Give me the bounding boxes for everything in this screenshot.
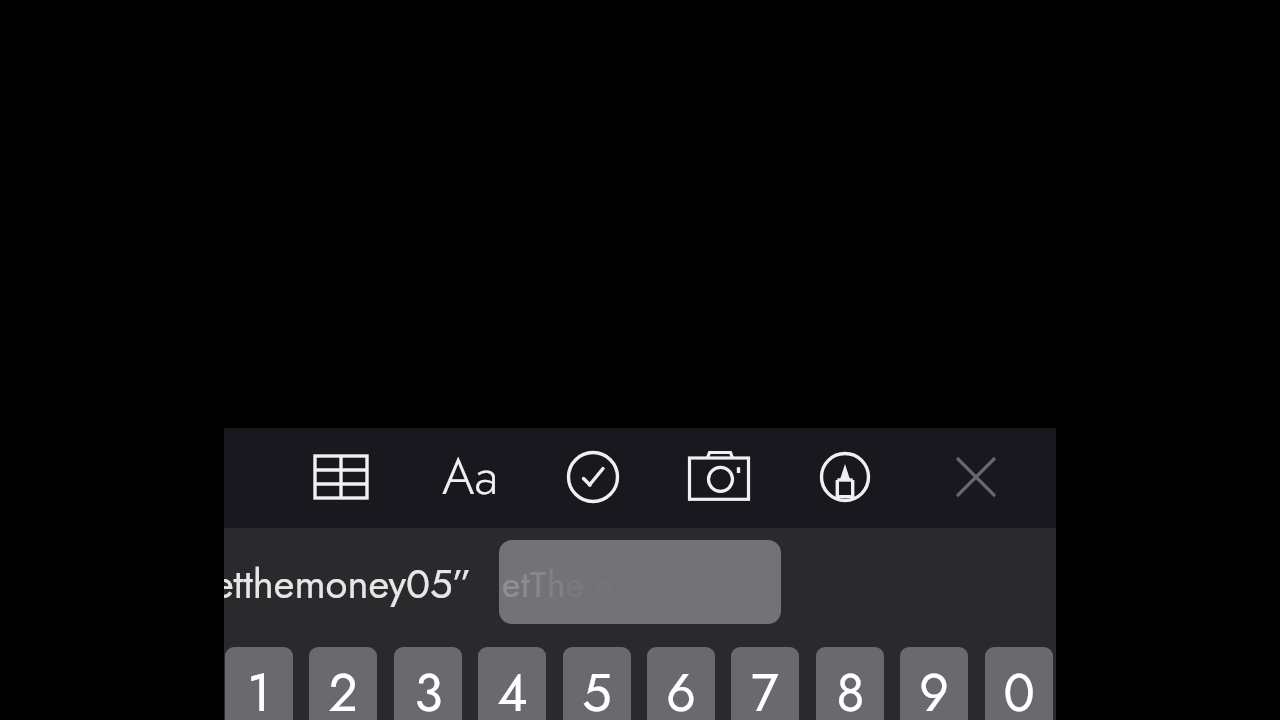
staticText: 7	[751, 655, 779, 720]
button[interactable]: Camera	[688, 446, 750, 508]
button[interactable]: 6	[647, 647, 715, 720]
button[interactable]: Insert table	[310, 446, 372, 508]
staticText: 5	[582, 655, 612, 720]
button[interactable]: 1	[225, 647, 293, 720]
button[interactable]: 7	[731, 647, 799, 720]
staticText: 3	[414, 655, 443, 720]
button[interactable]: 9	[900, 647, 968, 720]
staticText: t	[521, 560, 530, 611]
button[interactable]: Text format	[439, 446, 501, 508]
staticText: 6	[666, 655, 696, 720]
button[interactable]: 0	[985, 647, 1053, 720]
staticText: 2	[328, 655, 358, 720]
button[interactable]: Done	[562, 446, 624, 508]
staticText: 1	[247, 655, 271, 720]
button[interactable]: Close	[945, 446, 1007, 508]
button[interactable]: 4	[478, 647, 546, 720]
staticText: 0	[1003, 655, 1035, 720]
button[interactable]: Draw	[814, 446, 876, 508]
button[interactable]: 2	[309, 647, 377, 720]
staticText: Aa	[442, 439, 499, 501]
button[interactable]: e	[499, 540, 781, 624]
staticText: h	[547, 560, 566, 611]
button[interactable]: 5	[563, 647, 631, 720]
staticText: 9	[919, 655, 949, 720]
staticText: T	[530, 560, 547, 611]
button[interactable]: 8	[816, 647, 884, 720]
button[interactable]: 3	[394, 647, 462, 720]
staticText: 4	[497, 655, 528, 720]
staticText: e	[502, 560, 521, 611]
staticText: etthemoney05”	[224, 555, 472, 613]
staticText: 8	[836, 655, 865, 720]
